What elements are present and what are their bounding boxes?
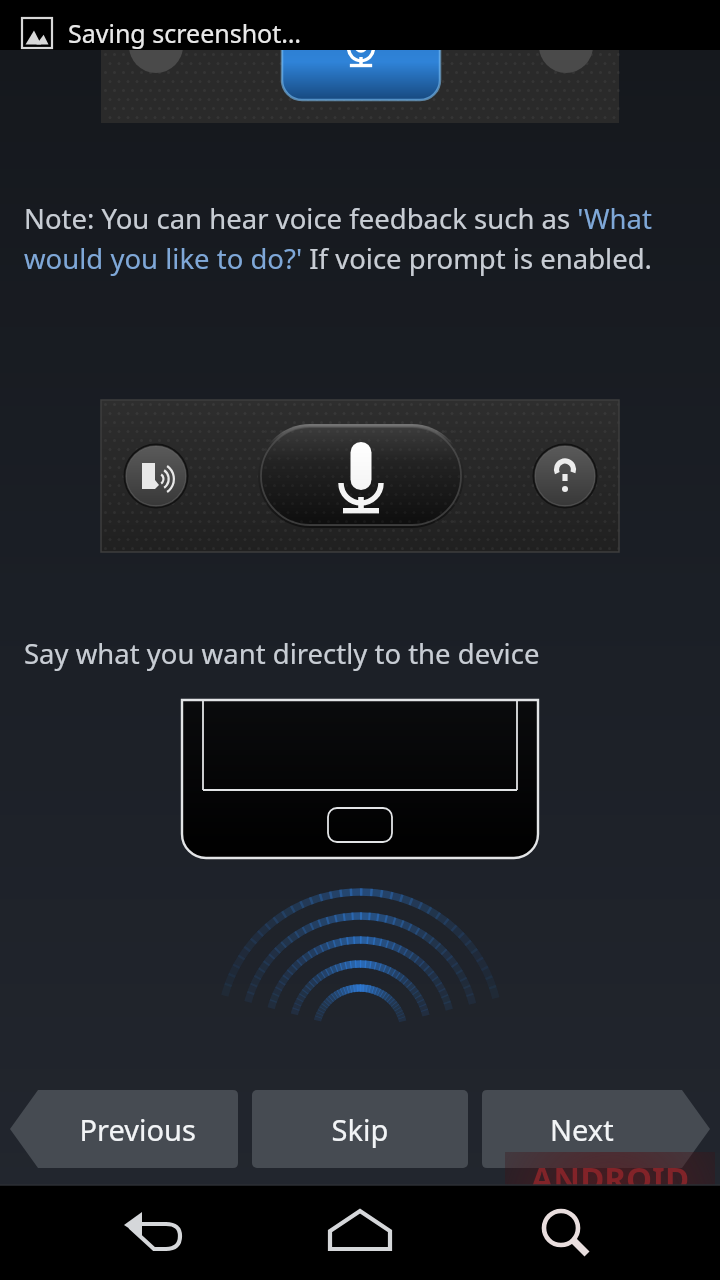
button[interactable]: Help <box>535 446 595 506</box>
button[interactable]: Text to speech <box>126 446 186 506</box>
button[interactable]: Speak now <box>261 427 461 525</box>
button[interactable]: Search <box>508 1190 628 1276</box>
button[interactable]: Back <box>92 1190 212 1276</box>
button[interactable]: Skip <box>252 1090 468 1168</box>
button[interactable]: Previous <box>10 1090 238 1168</box>
button[interactable]: Home <box>300 1190 420 1276</box>
button[interactable]: Next <box>482 1090 710 1168</box>
